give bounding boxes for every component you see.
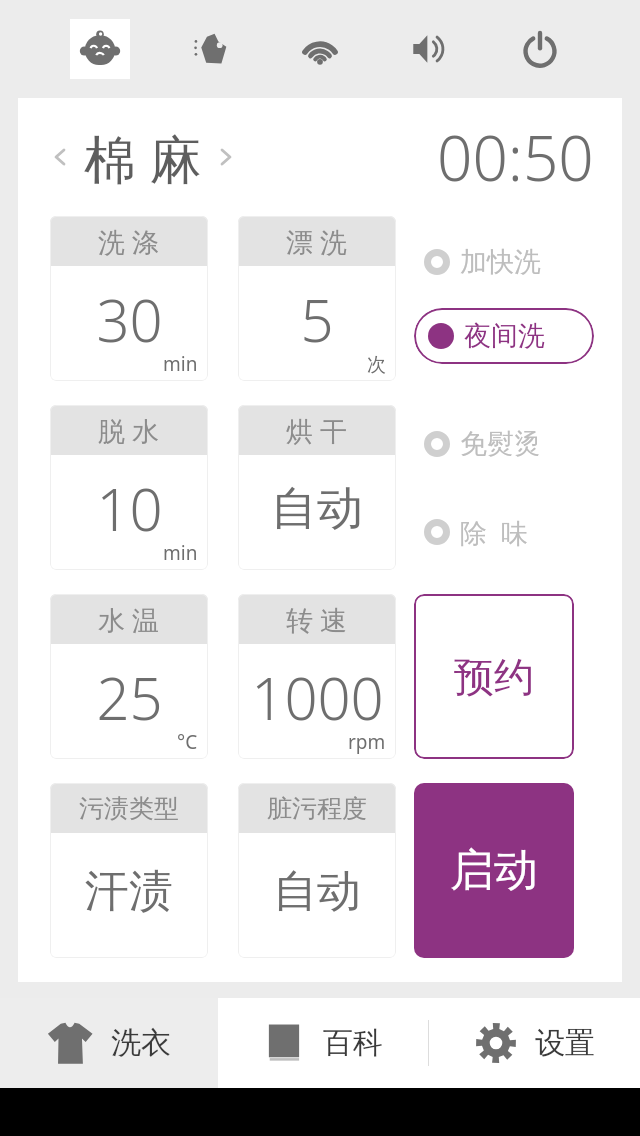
staticText: 25	[96, 658, 163, 737]
staticText: 5	[300, 280, 334, 359]
staticText: 烘 干	[286, 412, 348, 449]
staticText: 污渍类型	[79, 793, 179, 824]
button[interactable]: Wi-Fi	[290, 19, 350, 79]
button[interactable]: 洗 涤	[50, 216, 208, 381]
staticText: 启动	[450, 843, 538, 898]
staticText: 脱 水	[98, 412, 160, 449]
button[interactable]: 脱 水	[50, 405, 208, 570]
button[interactable]: 漂 洗	[238, 216, 396, 381]
button[interactable]: 百科	[218, 998, 428, 1088]
staticText: 自动	[273, 864, 361, 919]
staticText: 转 速	[286, 601, 348, 638]
staticText: 1000	[251, 658, 384, 737]
button[interactable]: 预约	[414, 594, 574, 759]
staticText: 免熨烫	[460, 427, 541, 461]
button[interactable]: 水 温	[50, 594, 208, 759]
button[interactable]: 设置	[429, 998, 640, 1088]
button[interactable]: Baby care	[70, 19, 130, 79]
staticText: 百科	[323, 1024, 383, 1062]
staticText: min	[163, 351, 198, 377]
button[interactable]: 转 速	[238, 594, 396, 759]
button[interactable]: Detergent	[180, 19, 240, 79]
staticText: 预约	[454, 652, 534, 702]
button[interactable]: 脏污程度	[238, 783, 396, 958]
staticText: min	[163, 540, 198, 566]
button[interactable]: Power	[510, 19, 570, 79]
staticText: 棉 麻	[84, 122, 202, 193]
button[interactable]: 启动	[414, 783, 574, 958]
staticText: 加快洗	[460, 245, 541, 279]
staticText: 水 温	[98, 601, 160, 638]
staticText: rpm	[348, 729, 386, 755]
button[interactable]: 烘 干	[238, 405, 396, 570]
staticText: 次	[367, 353, 386, 377]
staticText: 10	[96, 469, 163, 548]
staticText: 洗 涤	[98, 223, 160, 260]
button[interactable]: 免熨烫	[414, 416, 594, 472]
button[interactable]: 污渍类型	[50, 783, 208, 958]
staticText: 除 味	[460, 514, 529, 551]
staticText: 自动	[271, 480, 363, 538]
staticText: 夜间洗	[464, 319, 545, 353]
button[interactable]: 除 味	[414, 504, 594, 560]
button[interactable]: Next program	[208, 139, 244, 175]
staticText: 汗渍	[85, 864, 173, 919]
staticText: 漂 洗	[286, 223, 348, 260]
staticText: 设置	[535, 1024, 595, 1062]
button[interactable]: 洗衣	[0, 998, 218, 1088]
staticText: 00:50	[437, 115, 594, 199]
staticText: 30	[96, 280, 163, 359]
staticText: 洗衣	[111, 1024, 171, 1062]
button[interactable]: 夜间洗	[414, 308, 594, 364]
staticText: °C	[177, 729, 198, 755]
staticText: 脏污程度	[267, 793, 367, 824]
button[interactable]: Sound	[400, 19, 460, 79]
button[interactable]: 加快洗	[414, 234, 594, 290]
button[interactable]: Previous program	[42, 139, 78, 175]
